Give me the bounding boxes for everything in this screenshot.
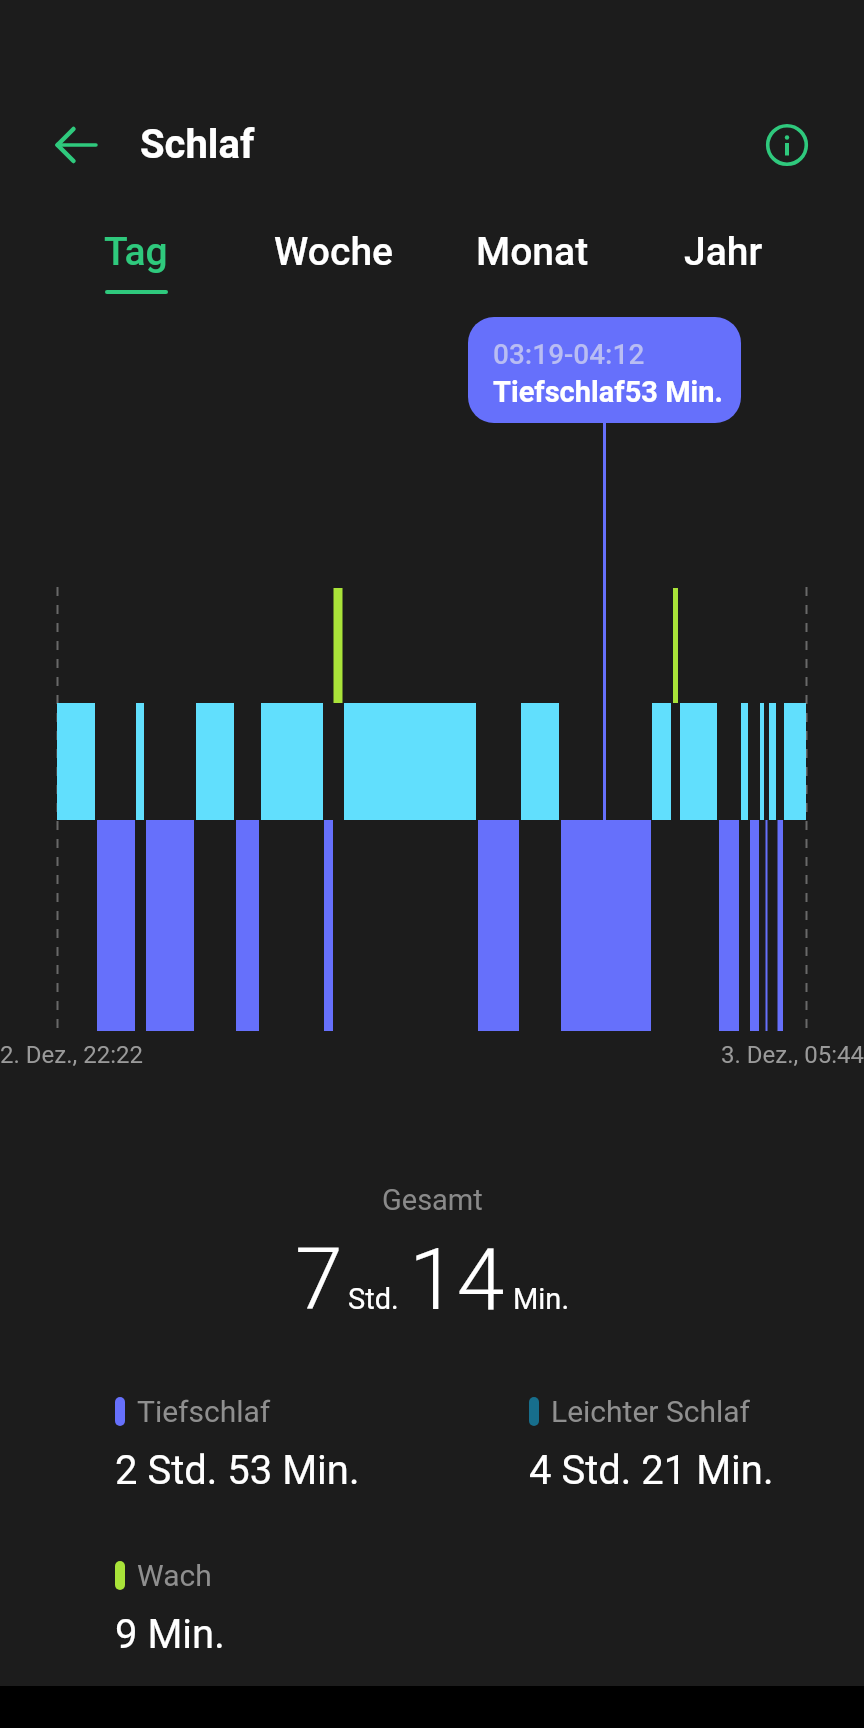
staticText: Schlaf [140,121,255,168]
staticText: Gesamt [382,1183,483,1217]
staticText: 14 [409,1229,505,1330]
staticText: 2. Dez., 22:22 [0,1041,143,1069]
button[interactable]: Jahr [643,218,803,286]
staticText: 9 Min. [115,1611,225,1658]
button[interactable] [45,113,109,177]
staticText: Jahr [684,229,763,275]
button[interactable]: Tag [56,218,216,286]
staticText: Tiefschlaf [137,1394,271,1429]
staticText: Woche [274,229,393,275]
staticText: 03:19-04:12 [493,338,645,371]
staticText: Tag [104,229,168,275]
staticText: Monat [476,229,589,275]
staticText: 4 Std. 21 Min. [529,1447,774,1494]
staticText: Wach [137,1558,212,1593]
staticText: Tiefschlaf53 Min. [493,375,723,409]
button[interactable]: Woche [253,218,413,286]
staticText: 7 [295,1229,343,1330]
staticText: 2 Std. 53 Min. [115,1447,360,1494]
button[interactable] [757,115,817,175]
staticText: 3. Dez., 05:44 [721,1041,864,1069]
staticText: Std. [348,1282,399,1316]
button[interactable]: Monat [452,218,612,286]
staticText: Leichter Schlaf [551,1394,750,1429]
staticText: Min. [513,1282,570,1316]
